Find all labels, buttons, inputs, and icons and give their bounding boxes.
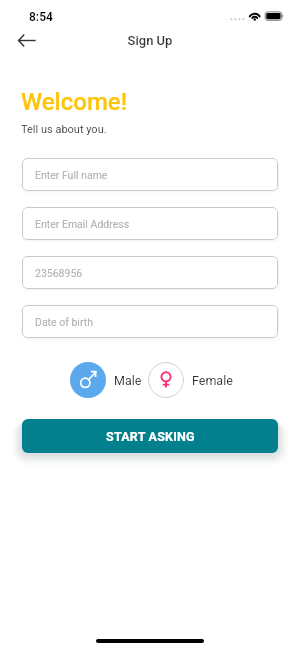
button[interactable]: Enter Email Address	[22, 207, 278, 240]
button[interactable]: Enter Full name	[22, 158, 278, 191]
staticText: Enter Email Address	[35, 218, 130, 230]
staticText: Male	[114, 373, 142, 388]
button[interactable]: Back	[13, 27, 39, 53]
staticText: Date of birth	[35, 316, 93, 328]
staticText: START ASKING	[106, 429, 195, 444]
staticText: 23568956	[35, 267, 83, 279]
button[interactable]: Male	[70, 362, 142, 398]
button[interactable]: START ASKING	[22, 419, 278, 453]
button[interactable]: Female	[148, 362, 233, 398]
staticText: Welcome!	[21, 88, 127, 116]
staticText: 8:54	[29, 10, 53, 24]
staticText: Enter Full name	[35, 169, 108, 181]
staticText: Sign Up	[0, 33, 300, 48]
staticText: Female	[192, 373, 233, 388]
staticText: Tell us about you.	[21, 123, 107, 136]
button[interactable]: Date of birth	[22, 305, 278, 338]
button[interactable]: 23568956	[22, 256, 278, 289]
